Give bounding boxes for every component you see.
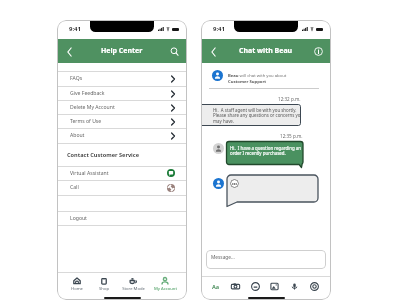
staticText: Hi. I have a question regarding an order… [230,145,301,157]
button[interactable]: Photos [268,280,281,293]
button[interactable]: Microphone [288,280,301,293]
staticText: 12:35 p.m. [280,133,303,139]
staticText: Shop [99,286,109,292]
staticText: Hi. A staff agent will be with you short… [213,107,301,125]
staticText: Virtual Assistant [70,170,109,177]
button[interactable]: Give Feedback [57,86,187,101]
staticText: Call [70,184,79,191]
button[interactable]: Virtual Assistant [57,166,187,180]
button[interactable]: Terms of Use [57,114,187,129]
button[interactable]: Back [207,45,220,58]
staticText: Store Mode [122,286,145,292]
staticText: Logout [70,215,87,222]
button[interactable]: Search [168,45,181,58]
button[interactable]: FAQs [57,71,187,86]
staticText: Contact Customer Service [67,151,139,159]
button[interactable]: Camera [229,280,242,293]
button[interactable]: About [57,128,187,143]
staticText: Terms of Use [70,118,102,125]
button[interactable]: Text format [209,280,222,293]
button[interactable]: Call [57,180,187,195]
button[interactable]: Back [63,45,76,58]
staticText: Aa [212,283,220,291]
button[interactable]: Home [63,277,91,296]
button[interactable]: Message... [206,250,326,269]
staticText: My Account [154,286,177,292]
staticText: Message... [211,254,235,261]
staticText: FAQs [70,75,83,82]
button[interactable]: Store Mode [119,277,147,296]
button[interactable]: Delete My Account [57,100,187,115]
staticText: Beau will chat with you about Customer S… [228,73,287,84]
staticText: Give Feedback [70,90,105,97]
staticText: About [70,132,85,139]
staticText: Chat with Beau [239,46,293,56]
staticText: Home [71,286,83,292]
staticText: Delete My Account [70,104,115,111]
button[interactable]: Emoji [249,280,262,293]
button[interactable]: Shop [90,277,118,296]
button[interactable]: Logout [57,211,187,225]
staticText: 9:41 [69,25,81,33]
staticText: Help Center [101,46,143,56]
button[interactable]: More options [308,280,321,293]
staticText: 12:32 p.m. [278,96,301,102]
button[interactable]: My Account [151,277,179,296]
staticText: 9:41 [213,25,225,33]
button[interactable]: Conversation info [312,45,325,58]
